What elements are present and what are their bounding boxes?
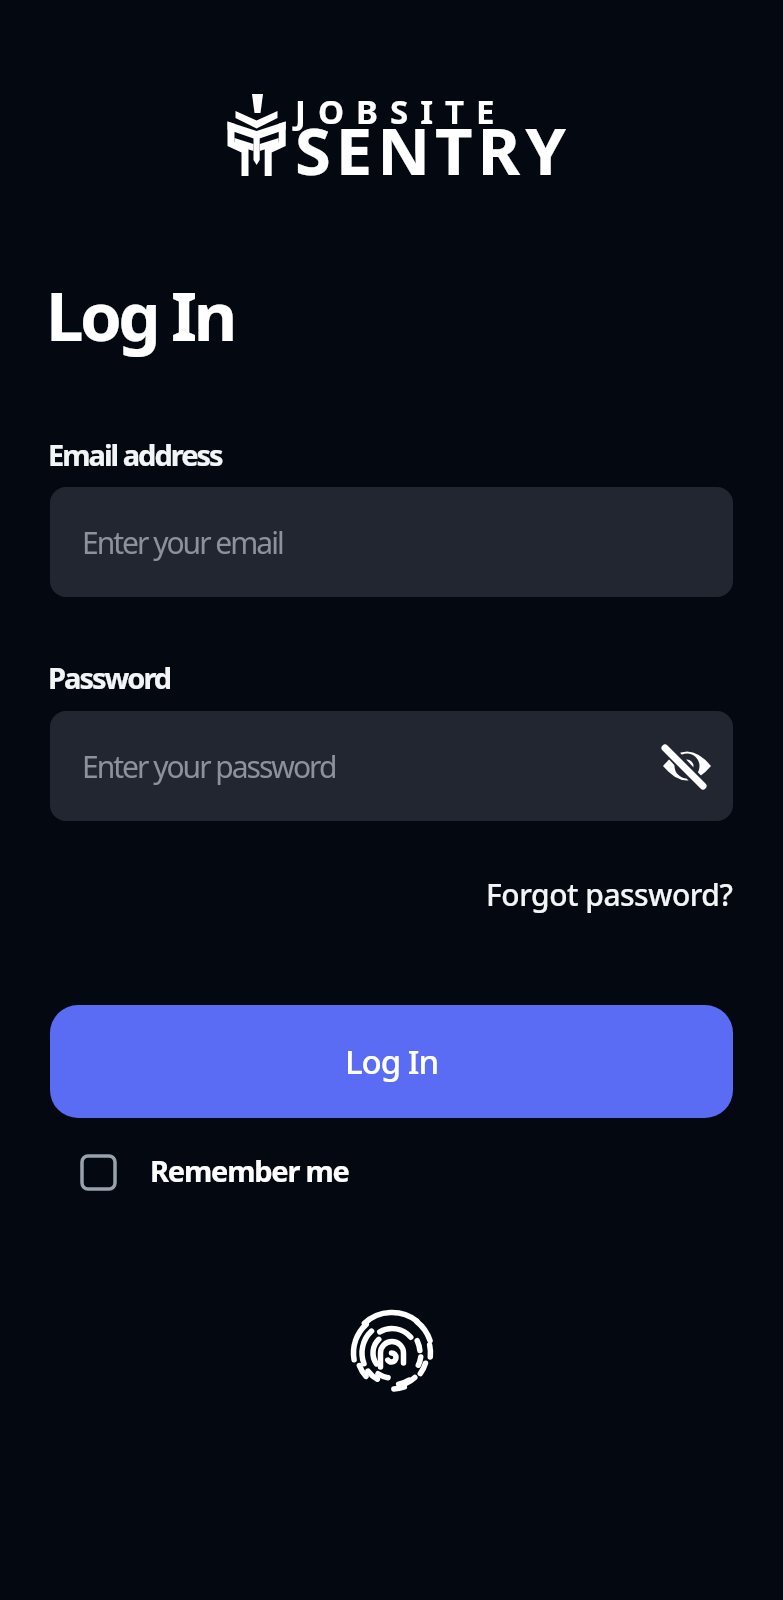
button[interactable]: Log In bbox=[50, 1005, 733, 1118]
staticText: Log In bbox=[345, 1039, 439, 1084]
staticText: Log In bbox=[46, 269, 234, 360]
staticText: Enter your email bbox=[82, 522, 283, 563]
button[interactable]: Enter your email bbox=[50, 487, 733, 597]
staticText: Remember me bbox=[150, 1151, 349, 1190]
staticText: Enter your password bbox=[82, 746, 336, 787]
staticText: Email address bbox=[48, 435, 222, 474]
staticText: SENTRY bbox=[295, 106, 571, 195]
staticText: JOBSITE bbox=[295, 89, 507, 134]
button[interactable] bbox=[340, 1300, 445, 1405]
button[interactable]: Remember me bbox=[80, 1148, 349, 1187]
button[interactable]: Forgot password? bbox=[486, 874, 733, 915]
button[interactable]: Enter your password bbox=[50, 711, 733, 821]
staticText: Forgot password? bbox=[486, 874, 733, 915]
staticText: Password bbox=[48, 658, 171, 697]
